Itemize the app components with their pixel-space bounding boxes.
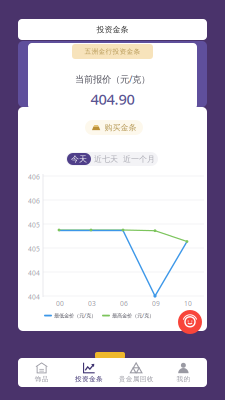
staticText: 购买金条 [104, 123, 136, 132]
staticText: 今天 [71, 154, 87, 164]
staticText: 10 [184, 299, 192, 308]
staticText: 404.90 [90, 89, 134, 109]
staticText: 03 [88, 299, 96, 308]
staticText: 当前报价（元/克） [75, 73, 150, 85]
button[interactable]: 投资金条 [65, 358, 112, 387]
staticText: 最低金价（元/克） [54, 312, 96, 319]
button[interactable]: 在线客服 [178, 310, 202, 334]
button[interactable]: 近七天 [91, 153, 121, 165]
button[interactable]: 投资金条 [18, 19, 207, 40]
staticText: 投资金条 [96, 25, 128, 34]
staticText: 405 [28, 245, 40, 253]
staticText: 五洲金行投资金条 [84, 47, 140, 56]
staticText: 405 [28, 221, 40, 229]
staticText: 贵金属回收 [119, 375, 154, 383]
button[interactable]: 我的 [160, 358, 207, 387]
staticText: 饰品 [35, 375, 49, 383]
button[interactable]: 今天 [67, 153, 91, 165]
staticText: 00 [56, 299, 64, 308]
staticText: 404 [28, 269, 40, 277]
button[interactable]: 饰品 [18, 358, 65, 387]
button[interactable]: 近一个月 [121, 153, 157, 165]
button[interactable]: 贵金属回收 [112, 358, 160, 387]
staticText: 406 [28, 173, 40, 181]
staticText: 最高金价（元/克） [112, 312, 154, 319]
staticText: 近七天 [94, 154, 118, 164]
staticText: 09 [152, 299, 160, 308]
staticText: 近一个月 [123, 154, 155, 164]
staticText: 我的 [176, 375, 190, 383]
button[interactable]: 购买金条 [85, 120, 143, 135]
staticText: 06 [120, 299, 128, 308]
staticText: 404 [28, 293, 40, 301]
staticText: 投资金条 [75, 375, 103, 383]
staticText: 406 [28, 197, 40, 205]
